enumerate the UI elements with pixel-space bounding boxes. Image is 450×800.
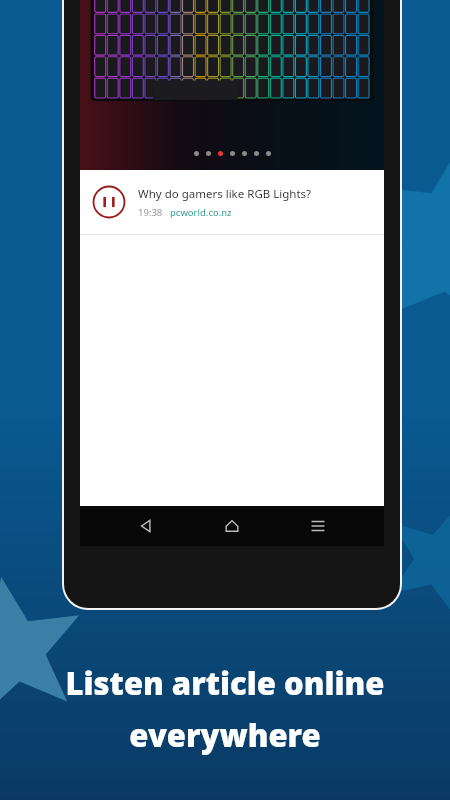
- button[interactable]: Back: [126, 506, 166, 546]
- button[interactable]: Pause: [92, 185, 126, 219]
- button[interactable]: Pause: [80, 170, 384, 234]
- button[interactable]: Recent apps: [298, 506, 338, 546]
- staticText: everywhere: [129, 714, 321, 756]
- button[interactable]: Home: [212, 506, 252, 546]
- staticText: pcworld.co.nz: [170, 206, 232, 219]
- staticText: 19:38: [138, 206, 163, 219]
- staticText: Why do gamers like RGB Lights?: [138, 186, 312, 202]
- staticText: Listen article online: [65, 662, 385, 704]
